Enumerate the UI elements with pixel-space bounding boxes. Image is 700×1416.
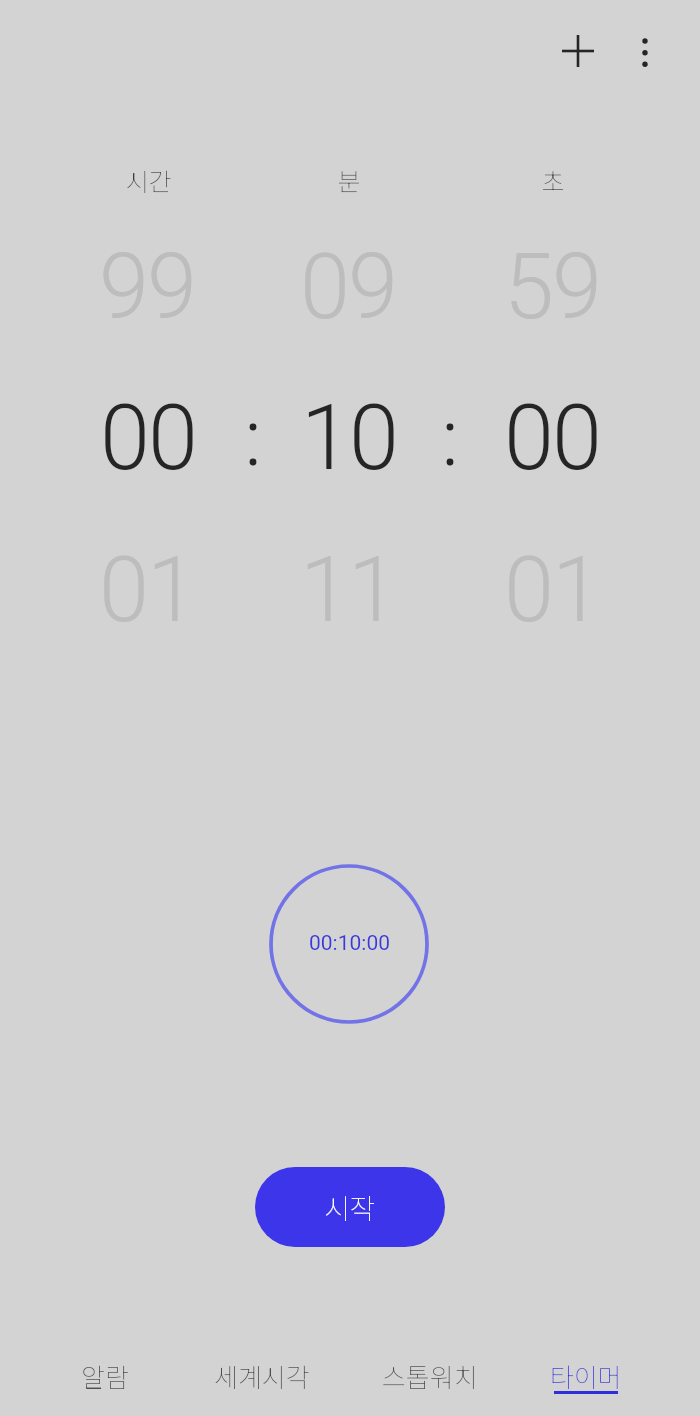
staticText: 10 — [301, 386, 397, 491]
staticText: 00:10:00 — [309, 931, 390, 956]
button[interactable]: 타이머 — [516, 1346, 656, 1406]
staticText: 초 — [541, 162, 565, 198]
button[interactable]: 스톱워치 — [350, 1346, 510, 1406]
staticText: 타이머 — [550, 1357, 622, 1395]
staticText: 99 — [99, 235, 195, 340]
staticText: 01 — [504, 538, 600, 643]
staticText: 59 — [504, 235, 600, 340]
staticText: 01 — [99, 538, 195, 643]
staticText: 분 — [337, 162, 361, 198]
staticText: 09 — [300, 235, 396, 340]
staticText: 시간 — [125, 162, 172, 198]
button[interactable]: 시작 — [255, 1167, 445, 1247]
staticText: 00 — [504, 386, 600, 491]
staticText: 11 — [300, 538, 396, 643]
staticText: 세계시각 — [214, 1357, 310, 1395]
staticText: 알람 — [81, 1357, 129, 1395]
button[interactable] — [621, 30, 669, 78]
staticText: 시작 — [324, 1187, 376, 1228]
button[interactable]: 알람 — [35, 1346, 175, 1406]
staticText: 스톱워치 — [382, 1357, 478, 1395]
button[interactable]: 세계시각 — [182, 1346, 342, 1406]
staticText: 00 — [100, 386, 196, 491]
button[interactable] — [554, 27, 602, 75]
